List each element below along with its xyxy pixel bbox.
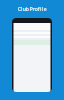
staticText: Club Profile [17, 5, 46, 13]
